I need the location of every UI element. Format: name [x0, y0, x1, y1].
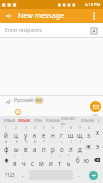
staticText: щ — [77, 131, 83, 139]
button[interactable]: 3 — [21, 125, 30, 139]
staticText: д — [78, 145, 82, 153]
button[interactable]: б — [73, 153, 82, 167]
staticText: ? — [68, 154, 70, 158]
button[interactable]: 1 — [1, 125, 11, 139]
button[interactable]: & — [30, 139, 39, 153]
button[interactable]: ?123 — [1, 167, 18, 183]
staticText: 9 — [79, 126, 81, 130]
staticText: 3 — [25, 126, 27, 130]
staticText: " — [23, 154, 25, 158]
staticText: New message — [18, 11, 64, 21]
staticText: / — [59, 154, 61, 158]
staticText: ЯЗЫК — [4, 118, 16, 124]
staticText: ЯЗЫКА — [46, 118, 60, 124]
button[interactable]: 2 — [11, 125, 21, 139]
staticText: э — [96, 142, 100, 150]
button[interactable]: 5 — [39, 125, 48, 139]
button[interactable]: # — [1, 139, 11, 153]
staticText: п — [42, 145, 46, 153]
staticText: ш — [68, 131, 74, 139]
staticText: * — [43, 140, 45, 144]
button[interactable]: % — [21, 139, 30, 153]
staticText: - — [52, 140, 54, 144]
staticText: и — [49, 159, 53, 167]
staticText: 7 — [61, 126, 63, 130]
button[interactable]: Attach — [3, 97, 12, 106]
button[interactable]: ; — [46, 153, 55, 167]
staticText: Enter recipients — [5, 27, 42, 34]
button[interactable]: 6 — [48, 125, 57, 139]
button[interactable]: + — [57, 139, 66, 153]
button[interactable]: ЯЗЫКОМ — [61, 116, 79, 125]
button[interactable]: " — [19, 153, 28, 167]
button[interactable]: ЯЗЫКЕ — [79, 116, 96, 125]
staticText: у — [24, 131, 28, 139]
staticText: 0/1 — [93, 113, 99, 116]
staticText: Русский ( — [14, 97, 36, 104]
button[interactable]: $ — [11, 139, 21, 153]
button[interactable]: ) — [75, 139, 84, 153]
staticText: н — [51, 131, 55, 139]
button[interactable]: 0 — [84, 125, 93, 139]
staticText: ( — [71, 140, 72, 144]
staticText: ЯЗЫКЕ — [81, 118, 95, 124]
button[interactable]: ? — [64, 153, 73, 167]
staticText: 4:18 PM — [85, 2, 101, 7]
staticText: г — [60, 131, 63, 139]
button[interactable]: Add contact — [89, 26, 98, 35]
staticText: ж — [86, 142, 91, 150]
button[interactable]: ЯЗЫК — [2, 116, 17, 125]
staticText: в — [24, 145, 28, 153]
button[interactable]: ЯЗЫК — [17, 116, 32, 125]
button[interactable]: 8 — [66, 125, 75, 139]
button[interactable]: ! — [11, 153, 19, 167]
staticText: о — [60, 145, 64, 153]
button[interactable]: Enter — [84, 167, 102, 183]
button[interactable]: * — [39, 139, 48, 153]
button[interactable]: ЯЗЫКА — [44, 116, 61, 125]
button[interactable]: Backspace — [91, 153, 102, 167]
button[interactable]: Back — [4, 11, 14, 21]
button[interactable]: - — [48, 139, 57, 153]
staticText: . — [78, 171, 80, 179]
button[interactable]: ж — [84, 139, 93, 153]
staticText: т — [58, 159, 61, 167]
button[interactable]: 9 — [75, 125, 84, 139]
staticText: х — [96, 128, 100, 136]
staticText: + — [61, 140, 63, 144]
staticText: е — [42, 131, 46, 139]
staticText: 6 — [52, 126, 54, 130]
staticText: к — [33, 131, 37, 139]
button[interactable]: э — [93, 139, 102, 153]
button[interactable]: : — [37, 153, 46, 167]
button[interactable]: Shift — [1, 153, 11, 167]
staticText: ) — [80, 140, 81, 144]
button[interactable]: / — [55, 153, 64, 167]
button[interactable]: 4 — [30, 125, 39, 139]
button[interactable]: ' — [28, 153, 37, 167]
button[interactable]: ю — [82, 153, 91, 167]
button[interactable]: 7 — [57, 125, 66, 139]
staticText: ю — [84, 156, 89, 164]
button[interactable]: More suggestions — [96, 116, 101, 125]
button[interactable]: . — [74, 167, 84, 183]
staticText: ' — [33, 154, 34, 158]
staticText: ы — [14, 145, 19, 153]
staticText: # — [5, 140, 8, 144]
button[interactable]: Emoji — [14, 108, 22, 116]
staticText: 2 — [15, 126, 17, 130]
staticText: ч — [22, 159, 26, 167]
button[interactable]: ЯЗЫ — [32, 116, 44, 125]
staticText: 1 — [5, 126, 7, 130]
staticText: ! — [15, 154, 16, 158]
staticText: з — [87, 131, 91, 139]
button[interactable]: Send — [90, 101, 101, 112]
staticText: ?123 — [5, 172, 15, 178]
button[interactable]: More options — [89, 11, 99, 21]
staticText: 4 — [34, 126, 36, 130]
button[interactable]: ( — [66, 139, 75, 153]
button[interactable]: , — [18, 167, 28, 183]
button[interactable]: х — [93, 125, 102, 139]
staticText: 5 — [43, 126, 45, 130]
